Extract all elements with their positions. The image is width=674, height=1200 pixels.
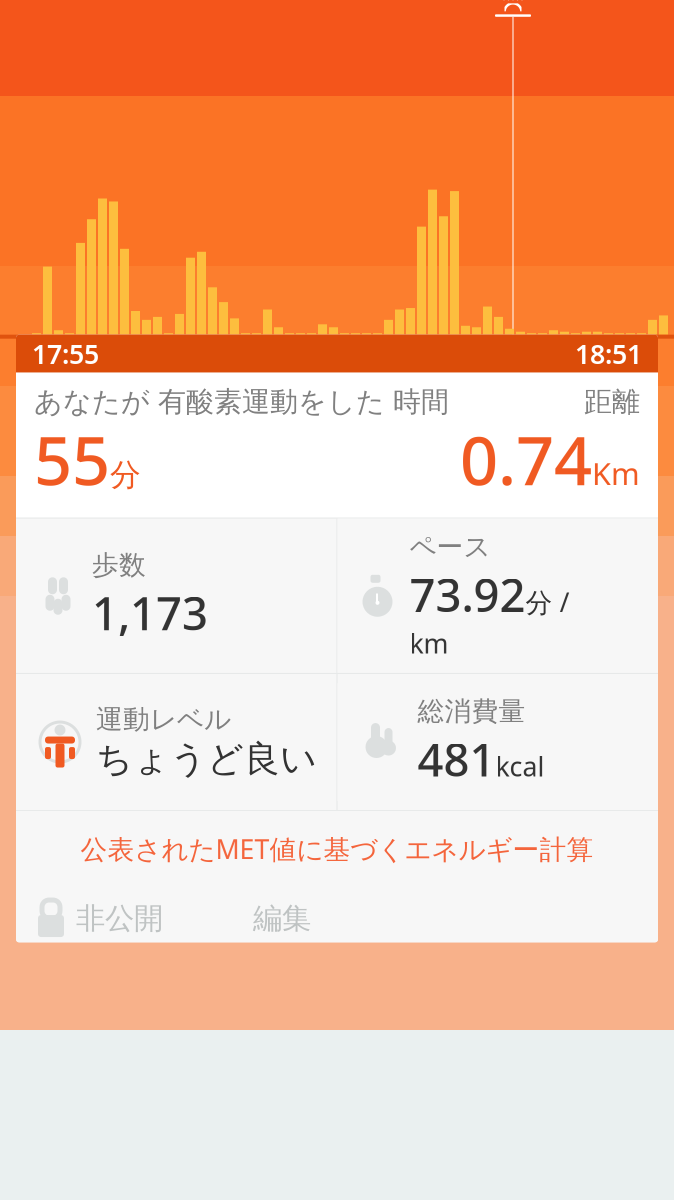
staticText: 0.74 [460,415,592,504]
staticText: 55 [34,415,110,504]
staticText: 総消費量 [417,695,525,728]
staticText: km [409,625,448,661]
staticText: kcal [495,748,544,784]
staticText: 73.92 [409,564,525,624]
staticText: 分 [110,456,141,494]
staticText: 18:51 [575,336,642,371]
staticText: Km [592,453,640,494]
staticText: あなたが 有酸素運動をした 時間 [34,385,449,419]
button[interactable]: 公表されたMET値に基づくエネルギー計算 [16,811,658,886]
staticText: 歩数 [92,549,146,582]
staticText: 非公開 [76,900,163,936]
staticText: 分 / [525,584,569,620]
staticText: 481 [417,729,495,789]
staticText: 距離 [584,385,640,419]
staticText: 1,173 [92,583,208,643]
staticText: 編集 [253,900,311,936]
staticText: ちょうど良い [96,737,317,781]
button[interactable]: 運動レベル [16,689,336,794]
staticText: 運動レベル [96,703,231,736]
button[interactable]: ペース [337,519,658,673]
button[interactable]: 総消費量 [337,683,658,801]
button[interactable]: 編集 [253,886,311,950]
button[interactable]: 歩数 [16,537,336,655]
staticText: 公表されたMET値に基づくエネルギー計算 [80,831,593,866]
staticText: ペース [409,531,490,563]
button[interactable]: 非公開 [16,886,163,950]
staticText: 17:55 [32,336,99,371]
